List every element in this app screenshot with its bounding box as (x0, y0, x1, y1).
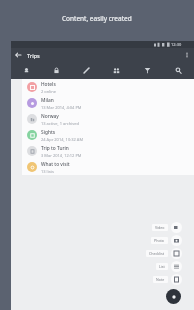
staticText: 13 active, 1 archived (41, 121, 79, 126)
staticText: Photo (154, 238, 165, 243)
button[interactable]: More options (180, 48, 194, 62)
staticText: Video (155, 225, 165, 230)
button[interactable]: Star (11, 62, 41, 79)
button[interactable]: Add (166, 289, 181, 304)
staticText: Note (156, 277, 165, 282)
button[interactable]: Filter (132, 62, 163, 79)
staticText: 13 Mar 2014, 4:04 PM (41, 105, 82, 110)
button[interactable]: Milan (22, 95, 194, 111)
staticText: Trip to Turin (41, 145, 69, 152)
button[interactable]: Lock (41, 62, 71, 79)
staticText: 3 Mar 2014, 12:12 PM (41, 153, 82, 158)
staticText: 24 Apr 2014, 10:32 AM (41, 137, 84, 142)
staticText: Norway (41, 113, 59, 120)
staticText: List (159, 264, 165, 269)
button[interactable]: Norway (22, 111, 194, 127)
staticText: What to visit (41, 161, 70, 168)
button[interactable]: Edit (71, 62, 101, 79)
button[interactable]: Sights (22, 127, 194, 143)
button[interactable]: What to visit (22, 159, 194, 175)
button[interactable]: Trip to Turin (22, 143, 194, 159)
button[interactable]: Hotels (22, 79, 194, 95)
staticText: 13 lists (41, 169, 54, 174)
button[interactable]: Video (152, 221, 182, 234)
staticText: 2 online (41, 89, 57, 94)
button[interactable]: Checklist (146, 247, 182, 260)
button[interactable]: Search (163, 62, 194, 79)
staticText: Trips (27, 52, 40, 59)
staticText: Content, easily created (62, 14, 132, 23)
staticText: Sights (41, 129, 56, 136)
button[interactable]: Back (11, 48, 25, 62)
button[interactable]: Group (101, 62, 132, 79)
staticText: Hotels (41, 81, 56, 88)
staticText: Milan (41, 97, 54, 104)
staticText: Checklist (149, 251, 165, 256)
staticText: 12:30 (171, 42, 182, 47)
button[interactable]: Note (153, 273, 182, 286)
button[interactable]: List (156, 260, 182, 273)
button[interactable]: Photo (151, 234, 182, 247)
